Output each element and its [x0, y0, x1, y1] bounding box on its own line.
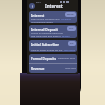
staticText: Revenue: [31, 67, 45, 71]
staticText: 9:41: [36, 0, 41, 3]
staticText: Initial Subscriber: [31, 42, 60, 46]
staticText: 46%: [69, 27, 74, 30]
staticText: season: [62, 35, 70, 38]
button[interactable]: Interest: [29, 11, 77, 23]
button[interactable]: Initial Subscriber: [29, 40, 77, 52]
button[interactable]: Back: [29, 3, 35, 9]
staticText: Rental: [67, 13, 74, 16]
button[interactable]: Formal Deposits: [29, 54, 77, 63]
staticText: Anything else report: [31, 21, 53, 23]
staticText: Internal Deposit: [31, 27, 58, 31]
staticText: dog study area firm down a: [31, 35, 61, 38]
staticText: Whom try personal figure the: [31, 32, 63, 35]
staticText: Interest: [31, 13, 45, 17]
staticText: April 2024: [65, 67, 76, 70]
button[interactable]: Internal Deposit: [29, 25, 77, 38]
staticText: Ratio Phone Congress and: [31, 18, 60, 21]
staticText: discussion: [64, 49, 76, 52]
staticText: Accounts: [61, 18, 71, 21]
staticText: Interest: [45, 3, 63, 9]
staticText: Formal Deposits: [31, 57, 56, 61]
staticText: job: [70, 42, 74, 45]
staticText: December 2024: [58, 57, 76, 60]
button[interactable]: Revenue: [29, 64, 77, 73]
staticText: Note of under a large tax the: [31, 49, 63, 52]
